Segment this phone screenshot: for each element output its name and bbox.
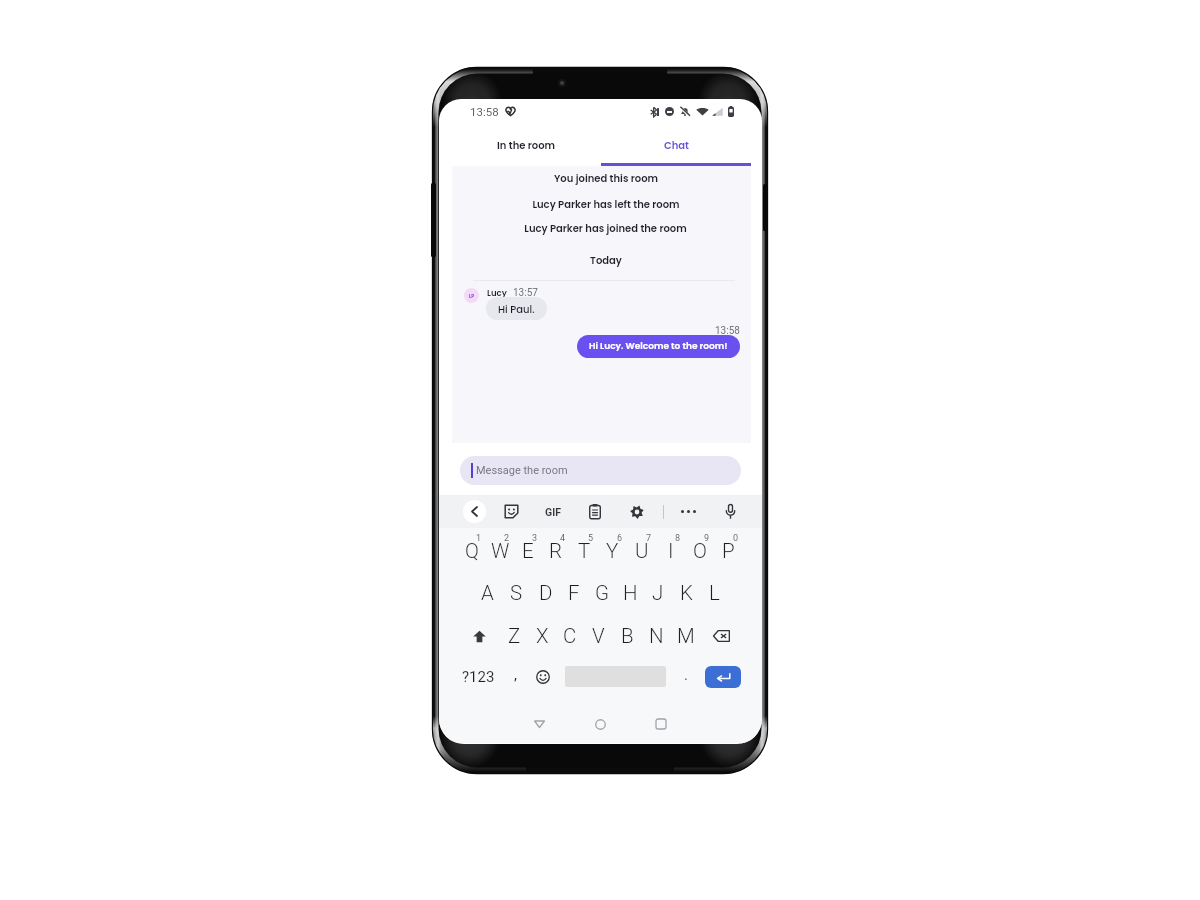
button[interactable]: Stickers (500, 495, 522, 528)
button[interactable]: B (613, 617, 642, 655)
staticText: S (510, 581, 523, 605)
button[interactable]: O (685, 531, 714, 569)
staticText: 0 (733, 533, 739, 544)
staticText: V (592, 624, 605, 648)
button[interactable]: Back (524, 709, 554, 739)
button[interactable]: E (514, 531, 542, 569)
staticText: U (635, 539, 649, 563)
staticText: C (563, 624, 577, 648)
button[interactable]: More options (680, 495, 696, 528)
button[interactable]: Message the room (460, 456, 741, 485)
button[interactable]: V (584, 617, 613, 655)
staticText: W (491, 539, 510, 563)
staticText: G (595, 581, 610, 605)
staticText: LP (469, 293, 474, 299)
staticText: 5 (588, 533, 594, 544)
staticText: 3 (532, 533, 538, 544)
button[interactable]: F (560, 574, 588, 612)
staticText: 7 (646, 533, 652, 544)
staticText: X (536, 624, 549, 648)
button[interactable]: U (627, 531, 656, 569)
button[interactable]: Hi Lucy. Welcome to the room! (577, 335, 740, 358)
staticText: T (578, 539, 591, 563)
button[interactable]: Recent apps (646, 709, 676, 739)
staticText: GIF (545, 506, 561, 518)
staticText: B (621, 624, 634, 648)
button[interactable]: W (486, 531, 514, 569)
staticText: 8 (675, 533, 681, 544)
button[interactable]: I (656, 531, 685, 569)
staticText: Hi Paul. (498, 302, 535, 316)
staticText: A (481, 581, 494, 605)
button[interactable]: G (588, 574, 616, 612)
button[interactable]: P (714, 531, 743, 569)
button[interactable]: N (642, 617, 671, 655)
button[interactable]: Shift (458, 617, 500, 655)
button[interactable]: Backspace (700, 617, 743, 655)
staticText: 13:58 (715, 325, 740, 337)
staticText: M (677, 624, 695, 648)
button[interactable]: X (528, 617, 556, 655)
button[interactable]: Emoji (532, 657, 553, 697)
staticText: Today (590, 253, 622, 267)
staticText: In the room (497, 138, 556, 152)
staticText: 9 (704, 533, 710, 544)
staticText: D (539, 581, 553, 605)
button[interactable]: Enter (705, 666, 741, 688)
button[interactable]: Z (500, 617, 528, 655)
button[interactable]: . (672, 657, 700, 697)
staticText: ?123 (462, 668, 495, 686)
button[interactable]: GIF (542, 495, 564, 528)
button[interactable]: Q (458, 531, 486, 569)
staticText: 4 (560, 533, 566, 544)
staticText: Q (465, 539, 479, 563)
staticText: Chat (664, 138, 689, 152)
staticText: Lucy (487, 287, 507, 299)
button[interactable]: M (671, 617, 700, 655)
staticText: R (549, 539, 563, 563)
staticText: 6 (617, 533, 623, 544)
button[interactable]: Keyboard settings (626, 495, 648, 528)
button[interactable]: Chat (601, 123, 751, 166)
staticText: Hi Lucy. Welcome to the room! (589, 340, 728, 353)
staticText: 2 (504, 533, 510, 544)
button[interactable]: R (542, 531, 570, 569)
staticText: Lucy Parker has joined the room (524, 221, 687, 235)
button[interactable]: Voice input (719, 495, 741, 528)
button[interactable]: J (644, 574, 672, 612)
staticText: Lucy Parker has left the room (532, 197, 680, 211)
button[interactable]: , (498, 657, 532, 697)
button[interactable]: C (556, 617, 584, 655)
staticText: J (652, 581, 664, 605)
staticText: I (668, 539, 674, 563)
staticText: E (522, 539, 534, 563)
button[interactable]: D (531, 574, 560, 612)
button[interactable]: Home (585, 709, 615, 739)
button[interactable]: Hide keyboard toolbar (463, 500, 486, 523)
staticText: 13:58 (470, 105, 499, 118)
staticText: , (514, 666, 517, 684)
staticText: 13:57 (513, 287, 538, 299)
button[interactable]: Y (598, 531, 627, 569)
button[interactable]: ?123 (458, 657, 498, 697)
button[interactable]: L (700, 574, 728, 612)
staticText: K (680, 581, 693, 605)
button[interactable]: Clipboard (584, 495, 606, 528)
staticText: F (568, 581, 580, 605)
button[interactable]: Lucy Parker profile (464, 288, 479, 303)
button[interactable]: Hi Paul. (486, 297, 547, 320)
staticText: O (693, 539, 707, 563)
button[interactable]: S (502, 574, 531, 612)
staticText: You joined this room (554, 171, 658, 185)
button[interactable]: K (672, 574, 700, 612)
staticText: Y (606, 539, 619, 563)
button[interactable]: T (570, 531, 598, 569)
button[interactable]: A (473, 574, 502, 612)
staticText: H (623, 581, 638, 605)
staticText: P (722, 539, 735, 563)
button[interactable]: H (616, 574, 644, 612)
button[interactable]: In the room (451, 123, 601, 166)
staticText: L (709, 581, 720, 605)
staticText: Z (508, 624, 521, 648)
